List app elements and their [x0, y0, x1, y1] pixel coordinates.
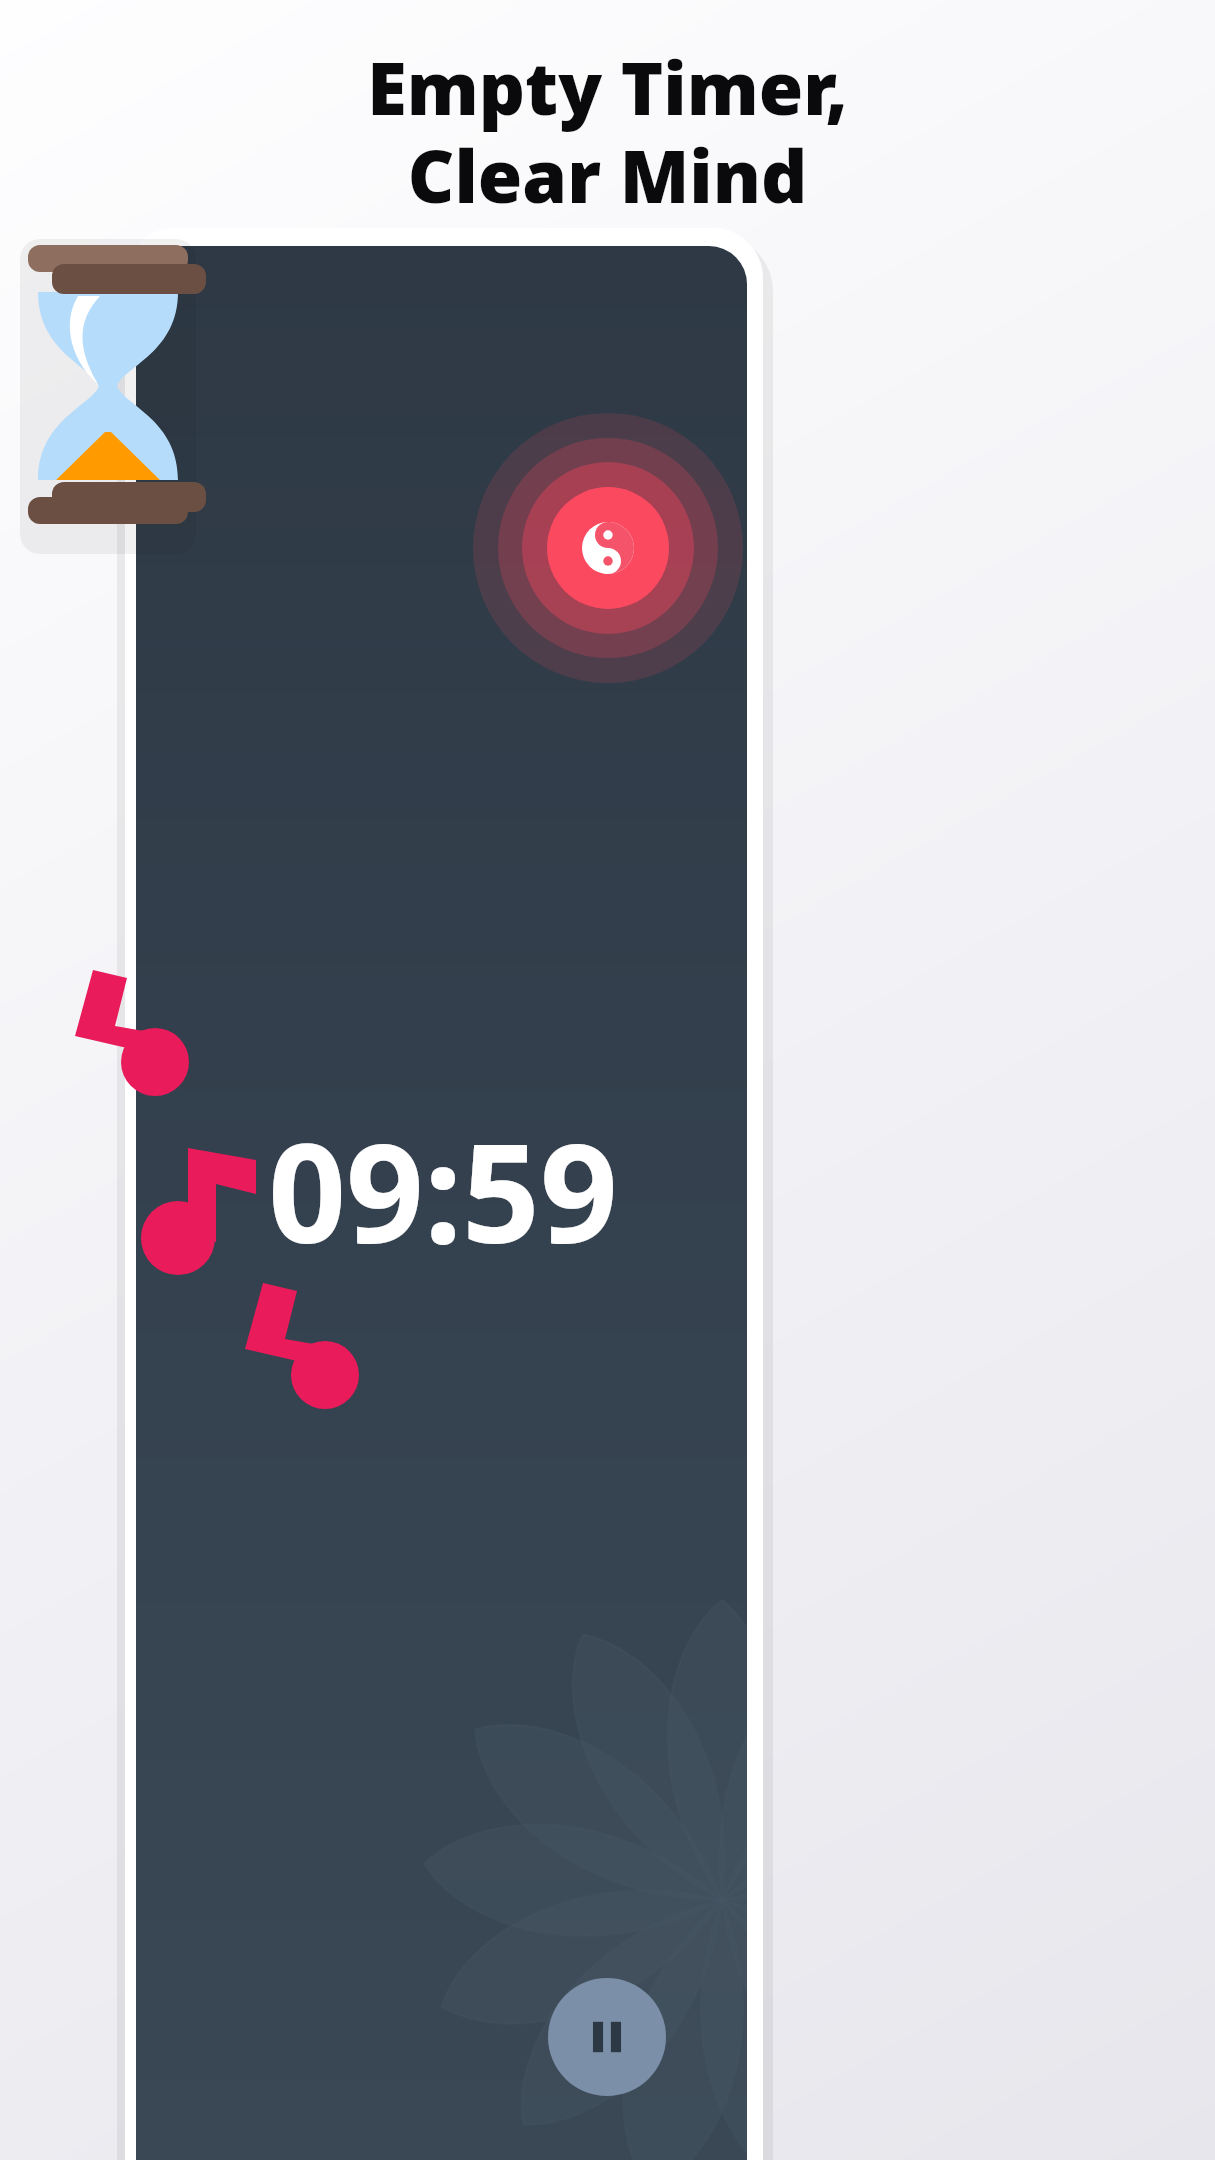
- staticText: Empty Timer, Clear Mind: [0, 38, 1215, 2160]
- staticText: 09:59: [138, 1098, 748, 1278]
- button[interactable]: Pause: [548, 1978, 666, 2096]
